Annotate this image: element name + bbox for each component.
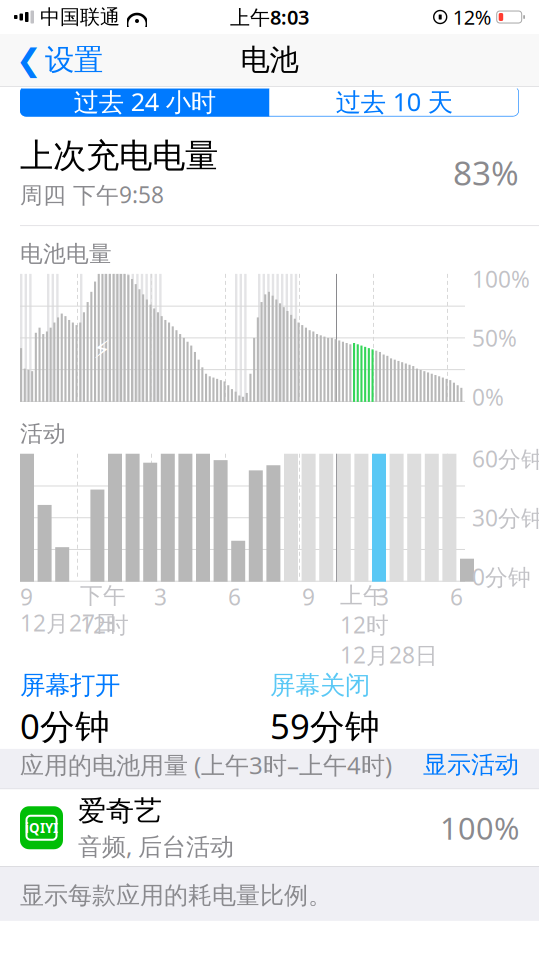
- staticText: 9: [20, 582, 33, 612]
- staticText: 中国联通: [40, 5, 120, 29]
- staticText: 59分钟: [270, 703, 380, 749]
- staticText: 爱奇艺: [78, 794, 162, 828]
- staticText: 音频, 后台活动: [78, 830, 234, 862]
- staticText: 上次充电电量: [20, 135, 218, 176]
- button[interactable]: 过去 10 天: [269, 86, 519, 116]
- staticText: 显示活动: [423, 750, 519, 780]
- staticText: ⚡︎: [93, 335, 111, 364]
- staticText: 过去 10 天: [336, 85, 453, 118]
- staticText: 3: [154, 582, 167, 612]
- staticText: 83%: [453, 150, 519, 195]
- button[interactable]: 显示活动: [423, 750, 519, 780]
- staticText: ❮: [16, 43, 42, 77]
- staticText: 活动: [20, 420, 66, 448]
- button[interactable]: iQIYI: [0, 789, 539, 866]
- staticText: 电池电量: [20, 240, 112, 268]
- staticText: 过去 24 小时: [74, 85, 216, 118]
- staticText: 0%: [472, 382, 504, 412]
- button[interactable]: 过去 24 小时: [20, 86, 269, 116]
- staticText: 电池: [240, 42, 298, 78]
- staticText: 12月27日: [20, 608, 118, 638]
- staticText: 屏幕打开: [20, 670, 120, 701]
- staticText: 下午 12时: [80, 582, 129, 640]
- staticText: 100%: [440, 807, 519, 848]
- staticText: 显示每款应用的耗电量比例。: [20, 881, 332, 910]
- staticText: 30分钟: [472, 503, 539, 533]
- staticText: 100%: [472, 264, 530, 294]
- staticText: iQIYI: [25, 819, 58, 837]
- staticText: 0分钟: [20, 703, 110, 749]
- staticText: 周四 下午9:58: [20, 179, 164, 209]
- staticText: 应用的电池用量 (上午3时–上午4时): [20, 749, 392, 781]
- staticText: 上午 12时 12月28日: [340, 582, 438, 670]
- staticText: 6: [228, 582, 241, 612]
- staticText: 3: [376, 582, 389, 612]
- staticText: 上午8:03: [230, 4, 309, 30]
- staticText: 60分钟: [472, 444, 539, 474]
- button[interactable]: ❮: [6, 36, 113, 84]
- staticText: 6: [450, 582, 463, 612]
- staticText: 屏幕关闭: [270, 670, 370, 701]
- staticText: 0分钟: [472, 562, 531, 592]
- staticText: 12%: [453, 4, 492, 30]
- staticText: 设置: [45, 42, 103, 78]
- staticText: 9: [302, 582, 315, 612]
- staticText: 50%: [472, 323, 517, 353]
